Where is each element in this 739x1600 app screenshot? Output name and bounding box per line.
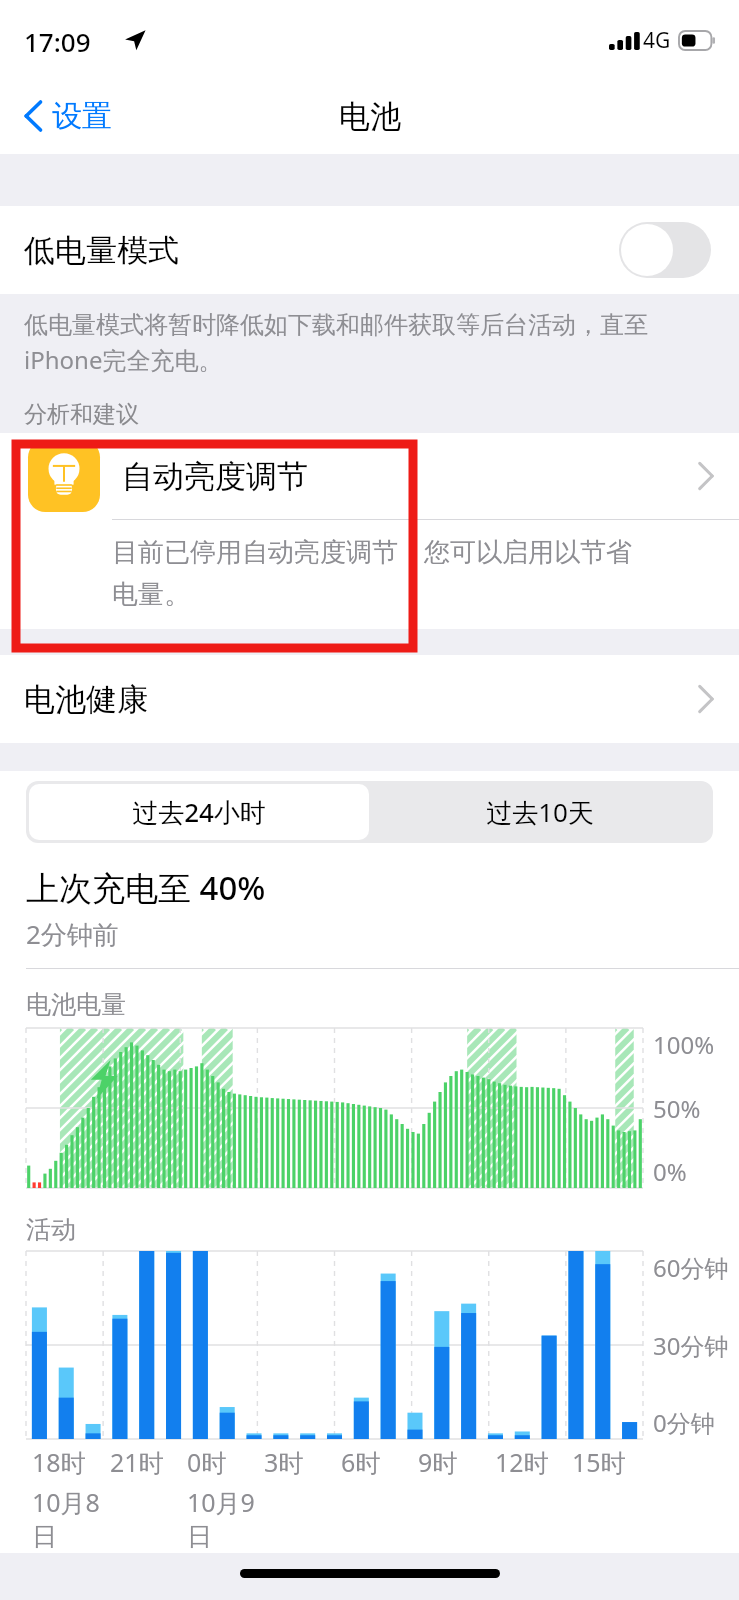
staticText: 4G	[643, 26, 671, 55]
staticText: 0分钟	[653, 1406, 715, 1439]
button[interactable]: 电池健康	[0, 655, 739, 743]
button[interactable]: 自动亮度调节	[0, 433, 739, 629]
staticText: 0%	[653, 1155, 687, 1188]
staticText: 15时	[572, 1445, 626, 1479]
button[interactable]: 过去10天	[369, 784, 710, 840]
staticText: 过去24小时	[132, 794, 266, 830]
button[interactable]: 低电量模式开关	[619, 222, 711, 278]
staticText: 100%	[653, 1028, 715, 1061]
staticText: 电池健康	[24, 680, 697, 719]
staticText: 30分钟	[653, 1329, 729, 1362]
staticText: 上次充电至 40%	[26, 865, 266, 910]
staticText: 21时	[110, 1445, 164, 1479]
staticText: 0时	[187, 1445, 227, 1479]
staticText: 低电量模式将暂时降低如下载和邮件获取等后台活动，直至 iPhone完全充电。	[24, 310, 648, 376]
staticText: 活动	[26, 1214, 76, 1245]
staticText: 12时	[495, 1445, 549, 1479]
button[interactable]: 过去24小时	[29, 784, 369, 840]
other: 打开	[697, 684, 715, 714]
button[interactable]: 低电量模式	[0, 206, 739, 294]
staticText: 3时	[264, 1445, 304, 1479]
staticText: 电池	[339, 97, 401, 136]
staticText: 18时	[32, 1445, 86, 1479]
staticText: 目前已停用自动亮度调节，您可以启用以节省 电量。	[112, 536, 632, 611]
button[interactable]: 设置	[18, 91, 118, 141]
staticText: 17:09	[24, 24, 91, 59]
staticText: 2分钟前	[26, 916, 119, 952]
staticText: 设置	[52, 97, 112, 135]
staticText: 50%	[653, 1092, 701, 1125]
staticText: 10月8日	[32, 1485, 104, 1553]
staticText: 60分钟	[653, 1251, 729, 1284]
staticText: 过去10天	[486, 794, 594, 830]
staticText: 6时	[341, 1445, 381, 1479]
staticText: 9时	[418, 1445, 458, 1479]
staticText: 低电量模式	[24, 231, 179, 270]
staticText: 分析和建议	[24, 400, 139, 429]
staticText: 10月9日	[187, 1485, 258, 1553]
other: 打开	[697, 461, 715, 491]
staticText: 电池电量	[26, 989, 126, 1020]
staticText: 自动亮度调节	[122, 457, 697, 496]
